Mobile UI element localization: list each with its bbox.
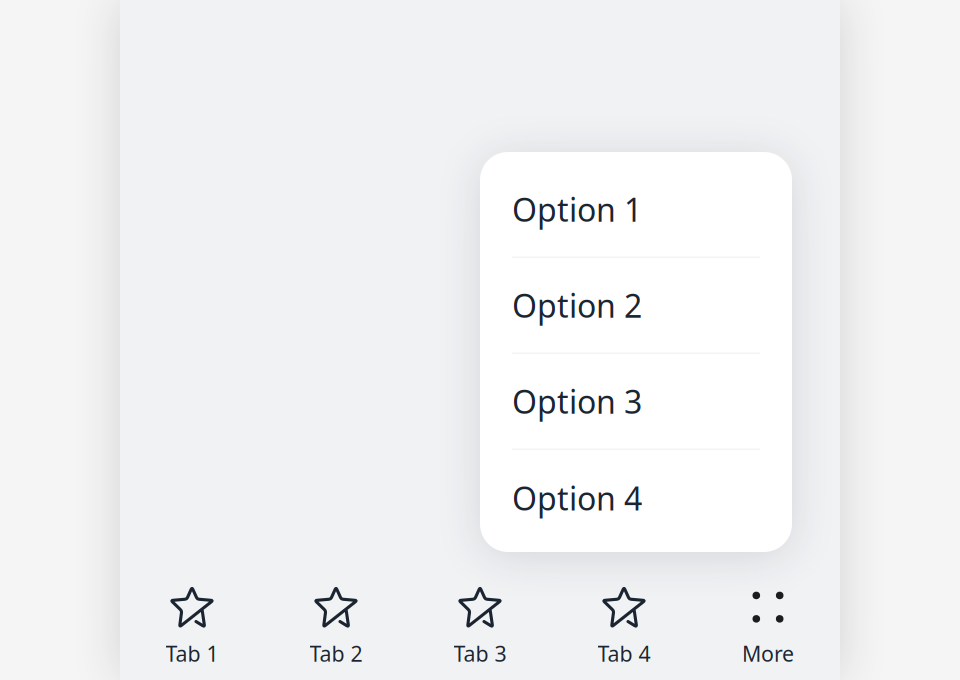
staticText: Tab 4 xyxy=(597,639,650,668)
staticText: Option 4 xyxy=(512,477,642,519)
staticText: Tab 2 xyxy=(309,639,362,668)
button[interactable]: Option 1 xyxy=(480,162,792,258)
staticText: Tab 3 xyxy=(453,639,506,668)
staticText: More xyxy=(742,639,794,668)
staticText: Option 2 xyxy=(512,284,642,326)
button[interactable]: Tab 1 xyxy=(120,570,264,680)
button[interactable]: Option 3 xyxy=(480,354,792,450)
button[interactable]: Tab 4 xyxy=(552,570,696,680)
button[interactable]: More xyxy=(696,570,840,680)
staticText: Option 3 xyxy=(512,380,642,422)
button[interactable]: Option 2 xyxy=(480,258,792,354)
staticText: Tab 1 xyxy=(165,639,218,668)
button[interactable]: Option 4 xyxy=(480,450,792,546)
button[interactable]: Tab 2 xyxy=(264,570,408,680)
button[interactable]: Tab 3 xyxy=(408,570,552,680)
staticText: Option 1 xyxy=(512,188,642,230)
